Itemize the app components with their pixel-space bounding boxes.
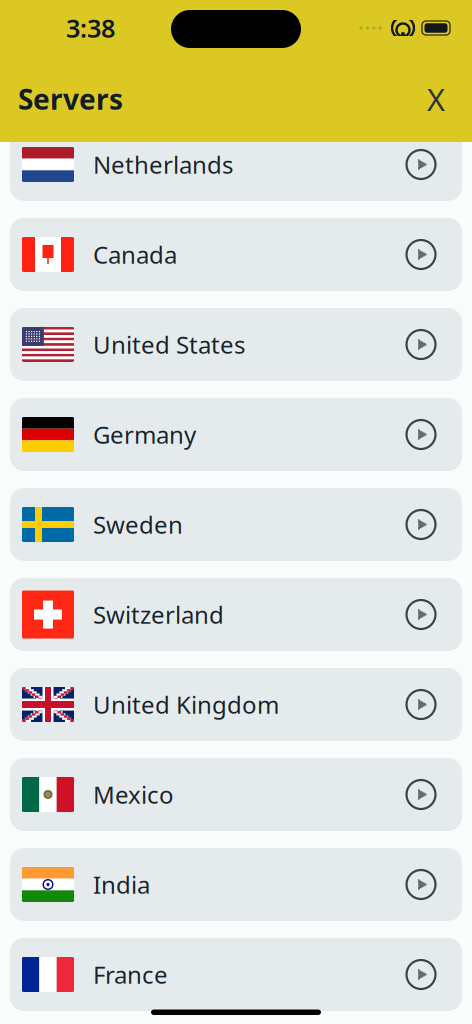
button[interactable]: Mexico <box>10 758 462 831</box>
button[interactable]: Close <box>414 77 458 121</box>
staticText: Switzerland <box>93 599 224 630</box>
button[interactable]: United Kingdom <box>10 668 462 741</box>
staticText: Netherlands <box>93 149 233 180</box>
staticText: Mexico <box>93 779 174 810</box>
button[interactable]: France <box>10 938 462 1011</box>
button[interactable]: Sweden <box>10 488 462 561</box>
staticText: United States <box>93 329 245 360</box>
staticText: Germany <box>93 419 196 450</box>
button[interactable]: Switzerland <box>10 578 462 651</box>
staticText: 3:38 <box>66 11 115 45</box>
button[interactable]: United States <box>10 308 462 381</box>
button[interactable]: Germany <box>10 398 462 471</box>
staticText: Servers <box>18 80 123 118</box>
staticText: X <box>427 79 445 119</box>
staticText: Sweden <box>93 509 183 540</box>
button[interactable]: Netherlands <box>10 128 462 201</box>
staticText: France <box>93 959 168 990</box>
staticText: United Kingdom <box>93 689 279 720</box>
button[interactable]: Canada <box>10 218 462 291</box>
staticText: India <box>93 869 150 900</box>
button[interactable]: India <box>10 848 462 921</box>
staticText: Canada <box>93 239 177 270</box>
